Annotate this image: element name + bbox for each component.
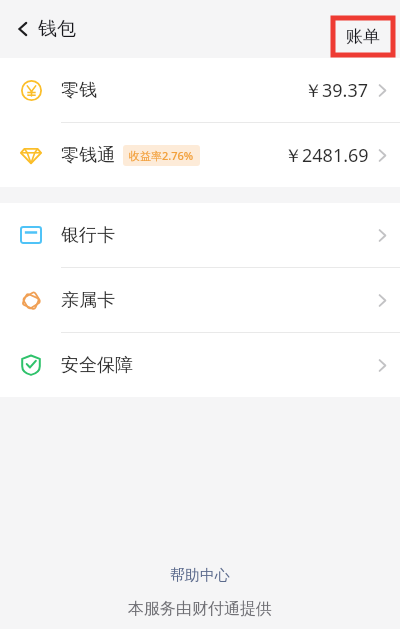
button[interactable]: 零钱: [0, 58, 400, 122]
button[interactable]: 帮助中心: [0, 566, 400, 585]
staticText: ￥39.37: [304, 78, 369, 103]
button[interactable]: 零钱通: [0, 123, 400, 187]
staticText: 账单: [346, 26, 380, 47]
button[interactable]: 安全保障: [0, 333, 400, 397]
staticText: ￥2481.69: [284, 143, 369, 168]
button[interactable]: 账单: [333, 18, 393, 55]
staticText: 亲属卡: [61, 289, 115, 312]
staticText: 本服务由财付通提供: [128, 599, 272, 619]
staticText: 银行卡: [61, 224, 115, 247]
button[interactable]: 返回: [6, 12, 40, 46]
staticText: 帮助中心: [170, 566, 230, 585]
staticText: 零钱: [61, 79, 97, 102]
button[interactable]: 亲属卡: [0, 268, 400, 332]
button[interactable]: 银行卡: [0, 203, 400, 267]
staticText: 收益率2.76%: [129, 148, 194, 163]
staticText: 钱包: [38, 17, 76, 41]
staticText: 安全保障: [61, 354, 133, 377]
staticText: 零钱通: [61, 144, 115, 167]
